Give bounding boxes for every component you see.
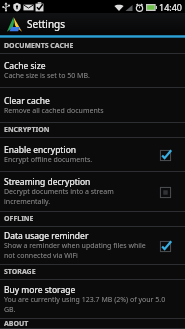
button[interactable]: Buy more storage bbox=[0, 280, 185, 319]
staticText: GB. bbox=[4, 305, 16, 315]
staticText: Enable encryption bbox=[4, 144, 77, 156]
staticText: 14:40 bbox=[159, 1, 183, 13]
staticText: Clear cache bbox=[4, 95, 50, 107]
button[interactable]: Streaming decryption bbox=[0, 172, 185, 212]
staticText: Show a reminder when updating files whil… bbox=[4, 241, 146, 251]
button[interactable]: Enabled bbox=[159, 240, 172, 253]
button[interactable]: Data usage reminder bbox=[0, 227, 185, 265]
staticText: Buy more storage bbox=[4, 284, 76, 296]
staticText: Encrypt offline documents. bbox=[4, 155, 93, 165]
staticText: Data usage reminder bbox=[4, 230, 89, 242]
staticText: incrementally. bbox=[4, 197, 51, 207]
button[interactable]: Cache size bbox=[0, 54, 185, 88]
staticText: not connected via WiFi bbox=[4, 251, 78, 261]
button[interactable]: Clear cache bbox=[0, 88, 185, 123]
staticText: OFFLINE bbox=[4, 214, 34, 224]
staticText: DOCUMENTS CACHE bbox=[4, 41, 74, 51]
button[interactable]: Enabled bbox=[159, 149, 172, 162]
staticText: STORAGE bbox=[4, 267, 36, 277]
staticText: Cache size bbox=[4, 60, 46, 72]
button[interactable]: Settings bbox=[0, 13, 185, 35]
staticText: ABOUT bbox=[4, 319, 29, 326]
staticText: ENCRYPTION bbox=[4, 125, 50, 135]
button[interactable]: Disabled bbox=[159, 186, 172, 199]
staticText: You are currently using 123.7 MB (2%) of… bbox=[4, 295, 166, 305]
staticText: Cache size is set to 50 MB. bbox=[4, 71, 90, 81]
staticText: Streaming decryption bbox=[4, 176, 91, 188]
staticText: Settings bbox=[27, 17, 66, 31]
staticText: Remove all cached documents bbox=[4, 106, 104, 116]
button[interactable]: Enable encryption bbox=[0, 138, 185, 172]
staticText: Decrypt documents into a stream bbox=[4, 187, 114, 197]
